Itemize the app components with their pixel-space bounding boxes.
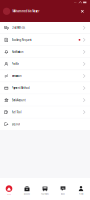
staticText: Payment Method	[11, 86, 30, 90]
button[interactable]: Log out	[0, 118, 90, 130]
staticText: Log out	[11, 122, 20, 126]
button[interactable]: Profile	[72, 185, 90, 195]
staticText: 9:41	[74, 1, 77, 3]
staticText: Fuel Tool	[11, 110, 22, 114]
staticText: Inbox	[61, 193, 65, 195]
staticText: Chat With Us	[11, 26, 25, 29]
staticText: Bank Account	[11, 98, 26, 102]
button[interactable]: Inbox	[54, 185, 72, 195]
staticText: Booking Request	[11, 38, 32, 42]
staticText: Booked	[24, 193, 30, 195]
button[interactable]: Booked	[18, 185, 36, 195]
button[interactable]: Chat With Us	[0, 22, 90, 34]
staticText: Profile	[11, 62, 19, 66]
button[interactable]: Profile	[0, 58, 90, 70]
button[interactable]: Transaction	[0, 70, 90, 82]
staticText: Tour Rides	[41, 193, 49, 195]
button[interactable]: Notification	[0, 46, 90, 58]
staticText: Notification	[11, 50, 24, 54]
button[interactable]: Tour Rides	[36, 185, 54, 195]
button[interactable]: Fuel Tool	[0, 106, 90, 118]
staticText: Transaction	[11, 74, 22, 78]
button[interactable]: Bank Account	[0, 94, 90, 106]
staticText: Home	[7, 193, 11, 195]
button[interactable]: Booking Request	[0, 34, 90, 46]
button[interactable]: Home	[0, 185, 18, 195]
button[interactable]: Close	[81, 10, 84, 13]
staticText: Mohammed bin Nasser	[12, 9, 39, 13]
button[interactable]: Payment Method	[0, 82, 90, 94]
staticText: Profile	[78, 193, 83, 195]
